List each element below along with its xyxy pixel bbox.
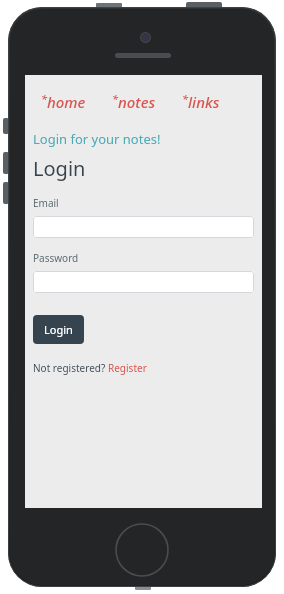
staticText: Login [33,155,86,182]
staticText: *home [41,91,86,112]
staticText: Login for your notes! [33,130,161,148]
staticText: Register [108,361,147,375]
button[interactable]: *notes [112,91,156,112]
button[interactable]: *links [182,91,220,112]
button[interactable]: Text input field [33,271,254,293]
button[interactable]: Text input field [33,216,254,238]
button[interactable]: Login for your notes! [33,130,161,148]
staticText: Password [33,251,79,265]
button[interactable]: Register [108,361,147,375]
staticText: Not registered? [33,361,108,375]
button[interactable]: *home [41,91,86,112]
staticText: *links [182,91,220,112]
staticText: Email [33,196,59,210]
staticText: Login [44,322,73,337]
button[interactable]: Login [33,315,84,344]
staticText: *notes [112,91,156,112]
